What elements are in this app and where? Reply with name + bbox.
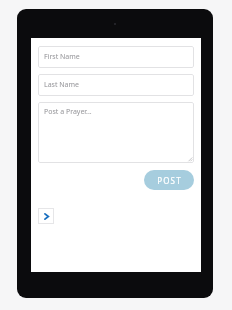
button[interactable]: Last Name: [38, 74, 194, 96]
button[interactable]: First Name: [38, 46, 194, 68]
staticText: POST: [157, 175, 182, 186]
button[interactable]: POST: [144, 170, 194, 190]
button[interactable]: Post a Prayer...: [38, 102, 194, 163]
staticText: Last Name: [44, 80, 80, 90]
button[interactable]: Next: [38, 208, 54, 224]
staticText: Post a Prayer...: [44, 107, 92, 117]
staticText: First Name: [44, 52, 80, 62]
